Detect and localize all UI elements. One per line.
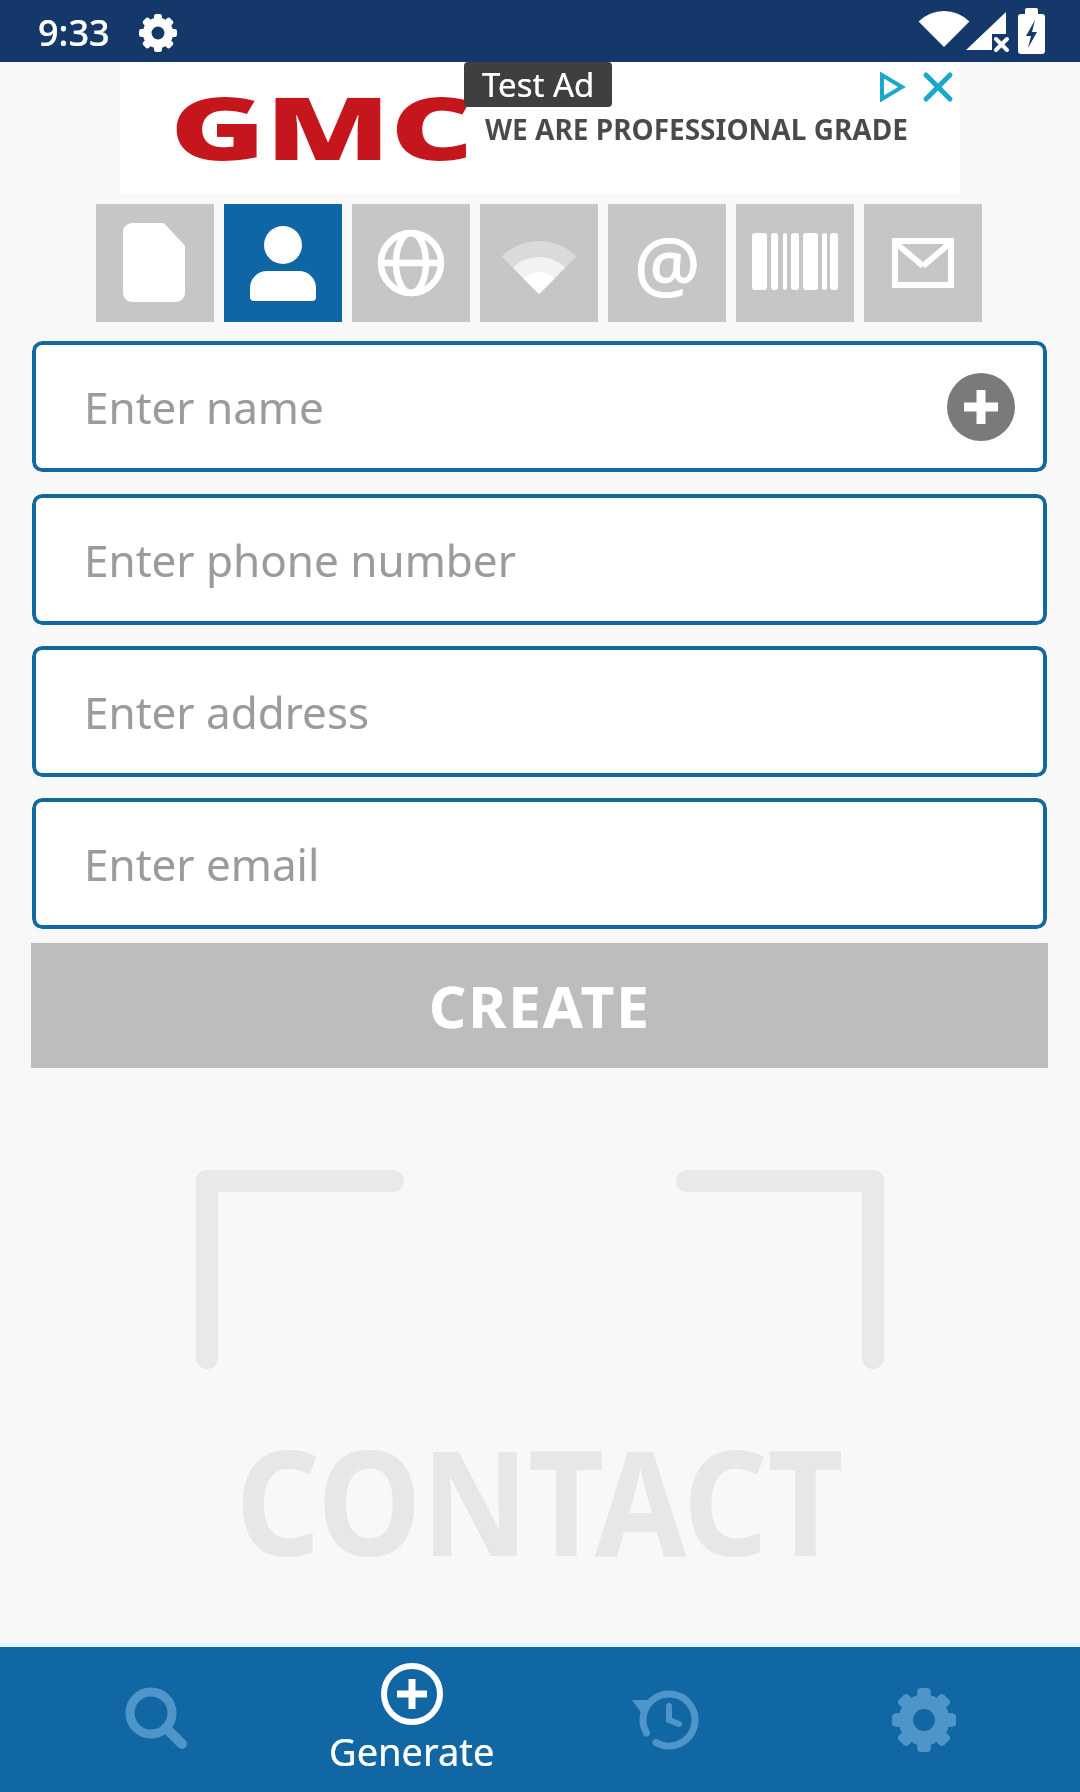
- button[interactable]: GMC: [120, 62, 960, 194]
- staticText: GMC: [170, 68, 474, 185]
- button[interactable]: [796, 1647, 1052, 1792]
- staticText: Generate: [329, 1725, 495, 1777]
- button[interactable]: [540, 1647, 796, 1792]
- button[interactable]: [224, 204, 342, 322]
- button[interactable]: Generate: [284, 1647, 540, 1792]
- staticText: CREATE: [429, 966, 651, 1045]
- button[interactable]: [352, 204, 470, 322]
- button[interactable]: [96, 204, 214, 322]
- staticText: CONTACT: [236, 1400, 844, 1599]
- staticText: Enter phone number: [84, 530, 516, 590]
- button[interactable]: Enter name: [32, 341, 1047, 472]
- button[interactable]: [947, 373, 1015, 441]
- button[interactable]: Enter phone number: [32, 494, 1047, 625]
- button[interactable]: [28, 1647, 284, 1792]
- button[interactable]: CREATE: [31, 943, 1048, 1068]
- button[interactable]: @: [608, 204, 726, 322]
- button[interactable]: [736, 204, 854, 322]
- staticText: WE ARE PROFESSIONAL GRADE: [485, 110, 908, 148]
- button[interactable]: [480, 204, 598, 322]
- button[interactable]: Enter email: [32, 798, 1047, 929]
- staticText: Test Ad: [482, 62, 595, 107]
- button[interactable]: Enter address: [32, 646, 1047, 777]
- staticText: Enter address: [84, 682, 370, 742]
- staticText: Enter name: [84, 377, 324, 437]
- staticText: @: [634, 213, 701, 314]
- staticText: Enter email: [84, 834, 320, 894]
- button[interactable]: [864, 204, 982, 322]
- staticText: 9:33: [38, 8, 110, 57]
